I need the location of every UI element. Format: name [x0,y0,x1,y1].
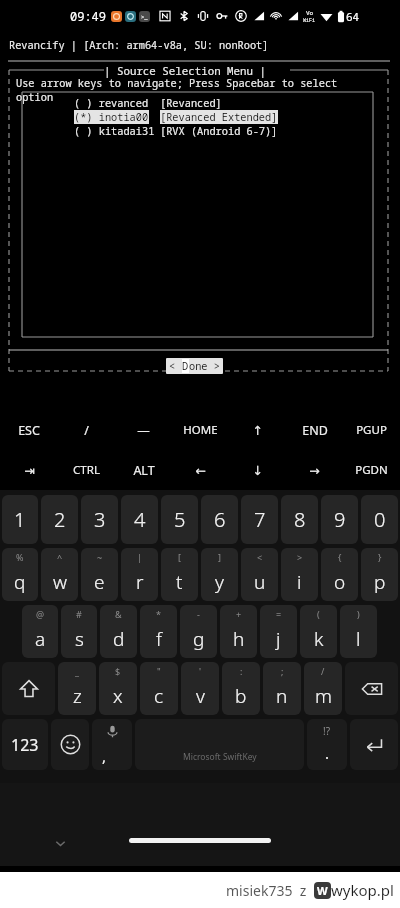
button[interactable]: Hide keyboard [48,831,72,855]
staticText: [Revanced] [160,96,222,110]
button[interactable]: PGUP [343,410,400,450]
button[interactable]: ] [201,548,238,601]
button[interactable]: PGDN [343,450,400,490]
button[interactable]: [ [161,548,198,601]
staticText: c [154,683,164,709]
button[interactable]: { [321,548,358,601]
button[interactable]: 4 [121,495,158,544]
button[interactable]: 3 [81,495,118,544]
staticText: W [317,883,328,898]
button[interactable]: + [220,605,257,658]
staticText: v [196,683,205,709]
button[interactable]: 9 [321,495,358,544]
button[interactable]: = [260,605,297,658]
staticText: ALT [133,462,155,479]
staticText: Revancify | [Arch: arm64-v8a, SU: nonRoo… [9,38,269,52]
staticText: , [102,746,107,766]
staticText: 7 [254,506,266,533]
button[interactable]: } [361,548,398,601]
button[interactable]: - [180,605,217,658]
staticText: _ [75,665,79,677]
button[interactable]: Period and punctuation [307,719,347,770]
button[interactable]: < [241,548,278,601]
button[interactable]: CTRL [58,450,115,490]
button[interactable]: ^ [41,548,78,601]
staticText: 1 [14,506,26,533]
button[interactable]: END [286,410,343,450]
button[interactable]: Space [135,719,304,770]
staticText: @ [36,608,45,620]
button[interactable]: 6 [201,495,238,544]
button[interactable]: < [166,358,223,374]
staticText: j [276,626,281,652]
button[interactable]: & [100,605,137,658]
staticText: ] [218,551,221,563]
button[interactable]: ) [340,605,377,658]
staticText: * [156,608,161,620]
button[interactable]: 0 [361,495,398,544]
staticText: !? [323,724,331,738]
staticText: 8 [294,506,306,533]
staticText: 4 [134,506,146,533]
staticText: # [76,608,82,620]
button[interactable]: ~ [81,548,118,601]
staticText: n [276,683,288,709]
staticText: END [302,422,328,439]
button[interactable]: — [115,410,172,450]
staticText: Vo [306,9,314,17]
staticText: [ [178,551,181,563]
button[interactable]: Backspace [345,662,398,715]
button[interactable]: ( [300,605,337,658]
button[interactable]: $ [99,662,137,715]
button[interactable]: # [61,605,97,658]
button[interactable]: ( ) kitadai31 [74,124,400,138]
button[interactable]: ↓ [229,450,286,490]
staticText: CTRL [73,462,100,478]
button[interactable]: 5 [161,495,198,544]
button[interactable]: * [140,605,177,658]
button[interactable]: 2 [41,495,78,544]
staticText: g [193,626,205,652]
button[interactable]: | [121,548,158,601]
button[interactable]: ← [172,450,229,490]
button[interactable]: 7 [241,495,278,544]
button[interactable]: ' [181,662,219,715]
button[interactable]: 1 [2,495,38,544]
button[interactable]: : [222,662,260,715]
staticText: ~ [97,551,103,563]
button[interactable]: " [140,662,178,715]
staticText: PGUP [356,422,387,438]
button[interactable]: 8 [281,495,318,544]
button[interactable]: % [2,548,38,601]
button[interactable]: ( ) revanced [74,96,400,110]
button[interactable]: @ [22,605,58,658]
button[interactable]: Enter [350,719,398,770]
staticText: ↓ [252,463,263,478]
button[interactable]: ; [263,662,301,715]
staticText: $ [115,665,121,677]
button[interactable]: Voice input and comma [92,719,132,770]
staticText: ^ [57,551,63,563]
button[interactable]: / [304,662,342,715]
button[interactable]: Numbers [2,719,48,770]
button[interactable]: (*) inotia00 [74,110,400,124]
button[interactable]: Shift [2,662,55,715]
staticText: (*) inotia00 [74,110,149,124]
staticText: o [334,569,346,595]
staticText: one > [189,359,220,373]
staticText: s [75,626,84,652]
staticText: < [169,359,182,373]
button[interactable]: → [286,450,343,490]
button[interactable]: ↑ [229,410,286,450]
button[interactable]: ESC [0,410,58,450]
staticText: | [137,551,142,563]
button[interactable]: HOME [172,410,229,450]
button[interactable]: ALT [115,450,172,490]
button[interactable]: ⇥ [0,450,58,490]
button[interactable]: Emoji [51,719,89,770]
button[interactable]: _ [58,662,96,715]
staticText: t [176,569,183,595]
staticText: r [136,569,144,595]
button[interactable]: > [281,548,318,601]
button[interactable]: / [58,410,115,450]
